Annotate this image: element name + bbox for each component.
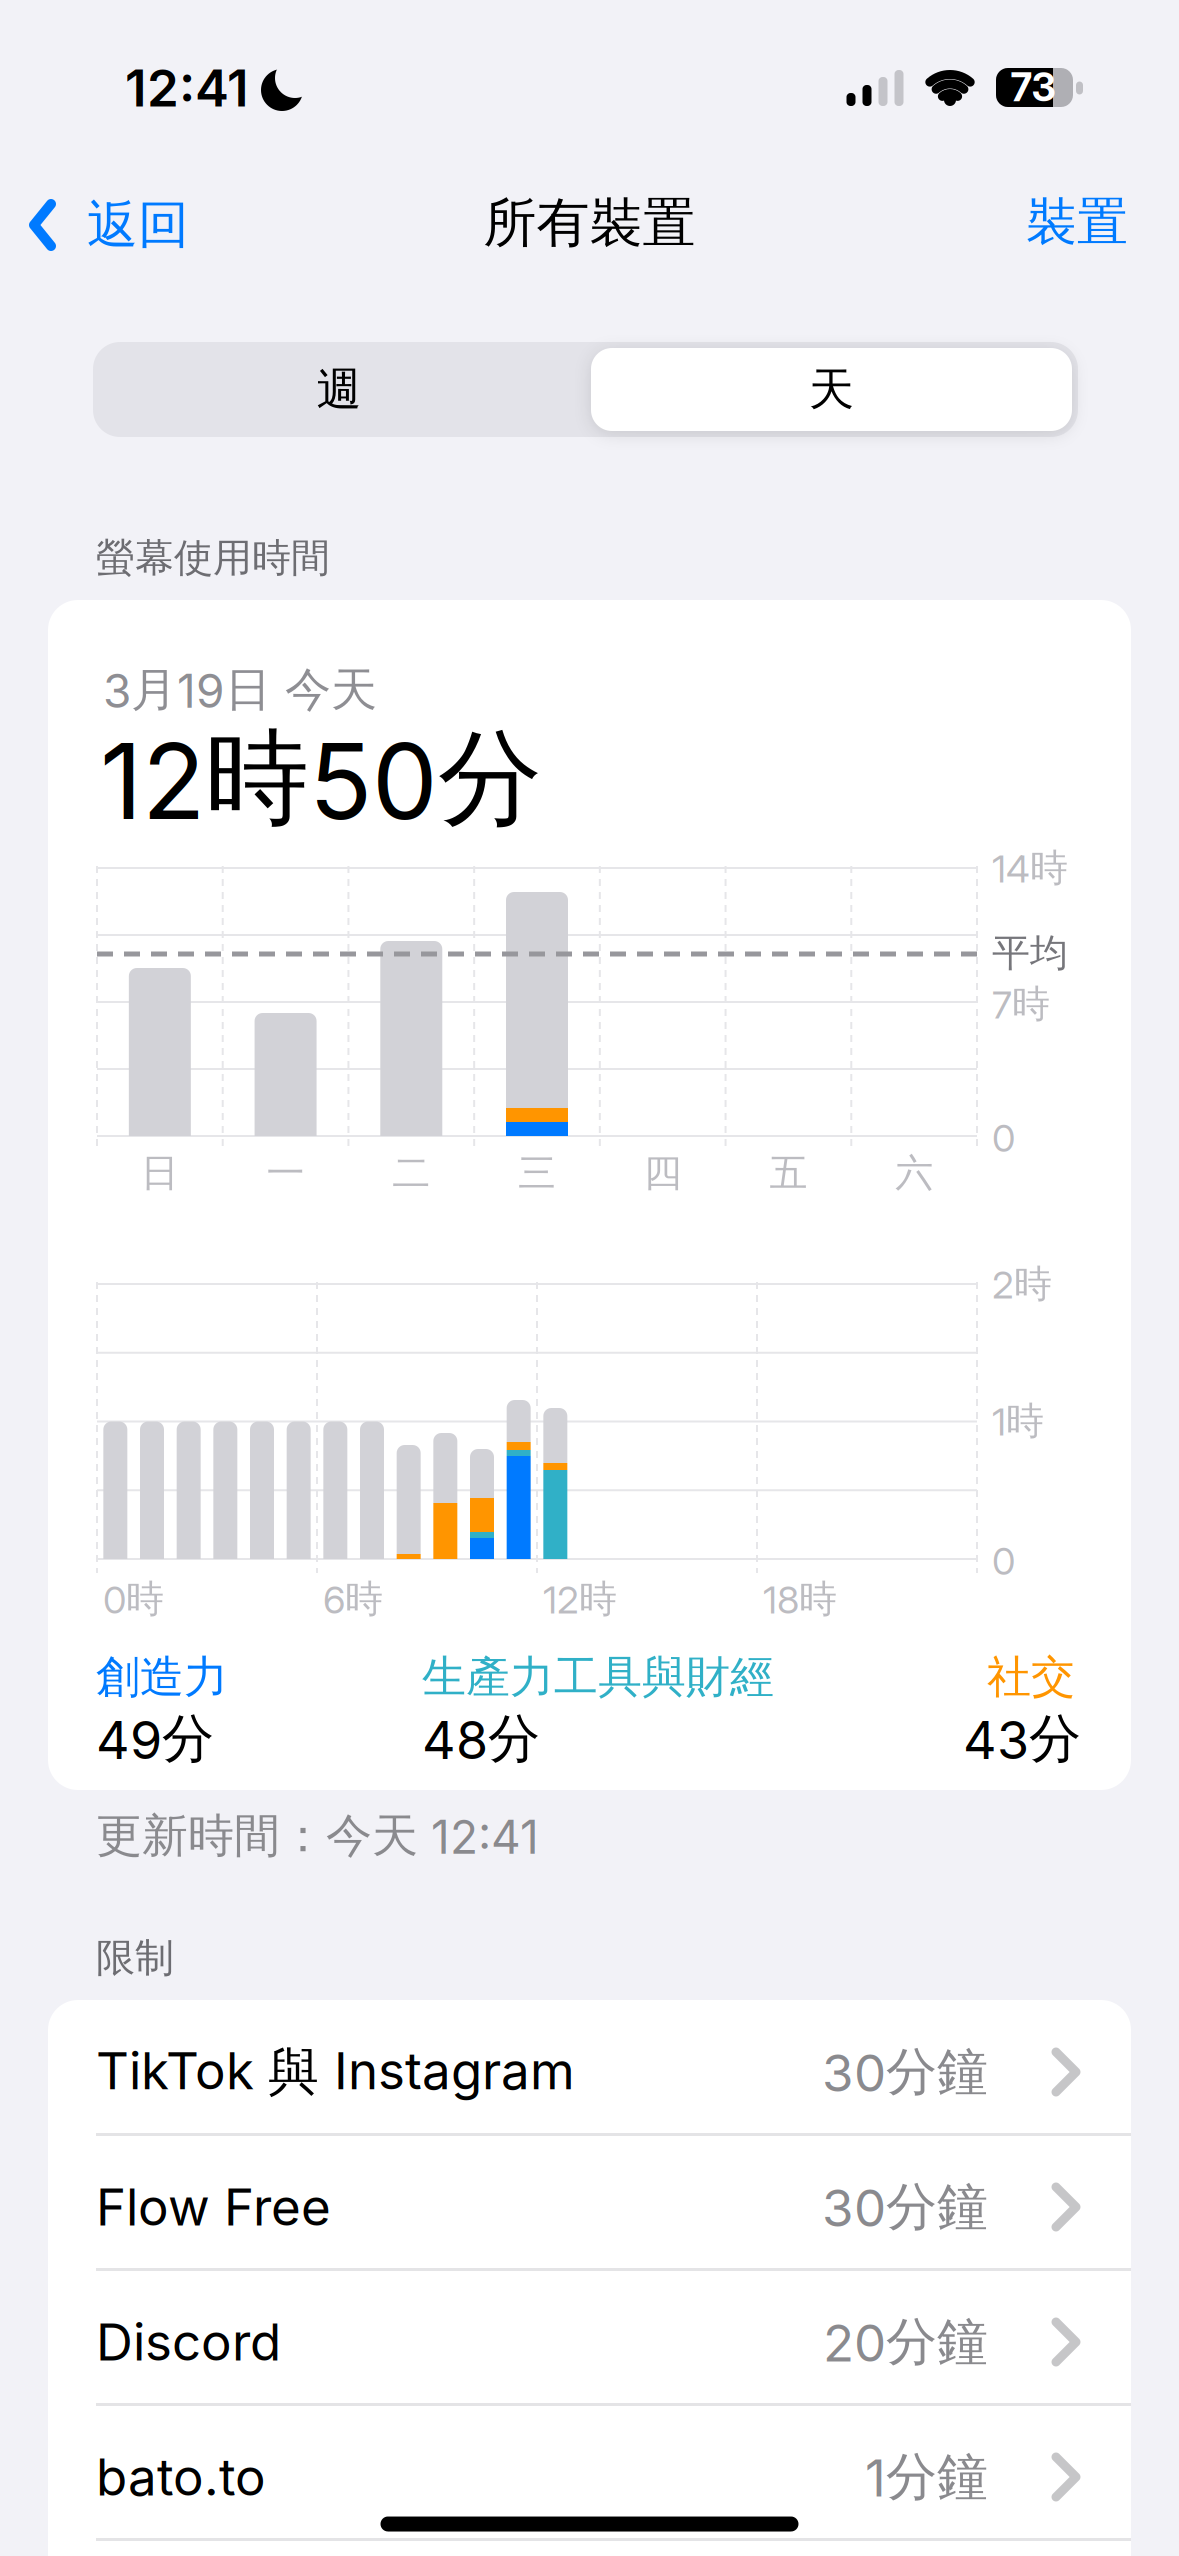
staticText: 73 [1010, 63, 1055, 111]
staticText: 社交 [987, 1649, 1075, 1705]
staticText: 3月19日 今天 [103, 661, 377, 719]
staticText: 12:41 [125, 57, 249, 119]
button[interactable]: Flow Free [48, 2139, 1131, 2274]
staticText: 更新時間：今天 12:41 [96, 1807, 539, 1865]
staticText: 限制 [96, 1933, 174, 1982]
staticText: bato.to [96, 2446, 266, 2508]
staticText: 所有裝置 [483, 190, 695, 256]
staticText: 49分 [96, 1706, 214, 1772]
staticText: 43分 [963, 1706, 1081, 1772]
staticText: 平均 [992, 929, 1068, 977]
staticText: 0時 [103, 1575, 164, 1623]
staticText: 五 [769, 1149, 807, 1197]
staticText: 48分 [422, 1706, 540, 1772]
staticText: 返回 [87, 193, 189, 257]
staticText: 1時 [992, 1397, 1044, 1445]
staticText: 7時 [992, 980, 1050, 1028]
button[interactable]: TikTok 與 Instagram [48, 2004, 1131, 2139]
button[interactable]: 裝置 [997, 188, 1157, 256]
staticText: 四 [644, 1149, 682, 1197]
button[interactable]: 返回 [25, 188, 255, 256]
staticText: 30分鐘 [822, 2175, 988, 2239]
staticText: 18時 [763, 1575, 837, 1623]
staticText: TikTok 與 Instagram [96, 2040, 575, 2104]
staticText: 30分鐘 [822, 2040, 988, 2104]
staticText: 14時 [992, 844, 1068, 892]
staticText: 螢幕使用時間 [96, 533, 330, 582]
staticText: 1分鐘 [865, 2445, 988, 2509]
staticText: 2時 [992, 1260, 1052, 1308]
staticText: 6時 [323, 1575, 383, 1623]
staticText: Flow Free [96, 2176, 331, 2238]
staticText: 天 [809, 361, 854, 418]
staticText: 0 [992, 1538, 1015, 1584]
staticText: 三 [518, 1149, 556, 1197]
staticText: 六 [895, 1149, 933, 1197]
staticText: Discord [96, 2311, 281, 2373]
staticText: 12時50分 [100, 713, 542, 844]
staticText: 一 [267, 1149, 305, 1197]
staticText: 0 [992, 1115, 1015, 1161]
staticText: 12時 [543, 1575, 617, 1623]
staticText: 日 [141, 1149, 179, 1197]
staticText: 創造力 [96, 1649, 228, 1705]
staticText: 裝置 [1026, 190, 1128, 254]
button[interactable]: 天 [588, 342, 1075, 437]
staticText: 二 [392, 1149, 430, 1197]
button[interactable]: Discord [48, 2274, 1131, 2409]
staticText: 生產力工具與財經 [422, 1649, 774, 1705]
staticText: 20分鐘 [823, 2310, 988, 2374]
staticText: 週 [316, 361, 361, 418]
button[interactable]: bato.to [48, 2409, 1131, 2544]
button[interactable]: 週 [99, 342, 579, 437]
